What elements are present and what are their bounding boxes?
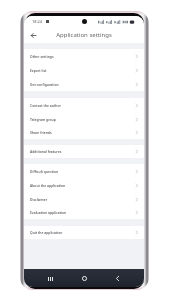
button[interactable]: Additional features (24, 145, 144, 158)
button[interactable]: Home (79, 273, 90, 284)
button[interactable]: About the application (24, 178, 144, 192)
staticText: Additional features (30, 149, 62, 154)
staticText: Get configuration (30, 82, 59, 87)
button[interactable]: Disclaimer (24, 192, 144, 206)
staticText: Telegram group (30, 117, 56, 122)
staticText: Other settings (30, 54, 54, 59)
button[interactable]: Contact the author (24, 98, 144, 112)
button[interactable]: Recent apps (45, 273, 56, 284)
button[interactable]: Share friends (24, 126, 144, 139)
staticText: About the application (30, 183, 66, 188)
button[interactable]: Get configuration (24, 77, 144, 91)
staticText: Export list (30, 68, 47, 73)
staticText: Share friends (30, 130, 52, 135)
button[interactable]: Difficult question (24, 164, 144, 178)
staticText: Evaluation application (30, 210, 67, 215)
staticText: Contact the author (30, 103, 61, 108)
button[interactable]: Evaluation application (24, 206, 144, 219)
button[interactable]: Back (112, 273, 123, 284)
staticText: Disclaimer (30, 197, 48, 202)
staticText: 18:24 (32, 19, 42, 24)
button[interactable]: Other settings (24, 49, 144, 63)
button[interactable]: Quit the application (24, 226, 144, 239)
staticText: Application settings (56, 31, 112, 39)
staticText: Difficult question (30, 169, 59, 174)
button[interactable]: Back (29, 31, 38, 40)
button[interactable]: Export list (24, 63, 144, 77)
button[interactable]: Telegram group (24, 112, 144, 126)
staticText: Quit the application (30, 230, 63, 235)
